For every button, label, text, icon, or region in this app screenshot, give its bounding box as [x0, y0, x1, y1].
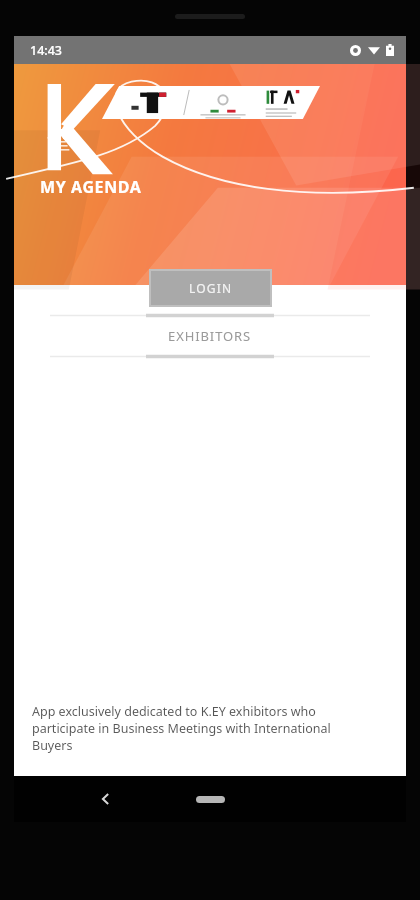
- button[interactable]: EXHIBITORS: [14, 318, 406, 354]
- button[interactable]: Back: [88, 781, 124, 817]
- button[interactable]: Home: [184, 786, 236, 812]
- staticText: .EY: [47, 123, 70, 143]
- staticText: LOGIN: [189, 280, 233, 296]
- staticText: App exclusively dedicated to K.EY exhibi…: [32, 703, 372, 754]
- staticText: MY AGENDA: [40, 176, 142, 198]
- staticText: EXHIBITORS: [168, 327, 252, 345]
- button[interactable]: LOGIN: [151, 271, 270, 305]
- staticText: 14:43: [30, 42, 63, 59]
